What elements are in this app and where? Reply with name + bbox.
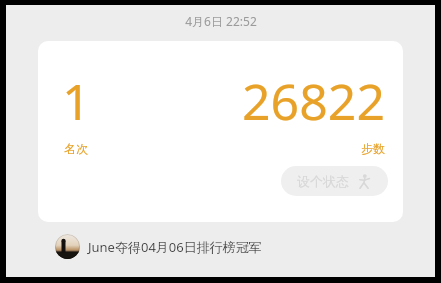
button[interactable]: 设个状态: [281, 166, 388, 196]
staticText: 步数: [361, 141, 385, 156]
button[interactable]: 1: [38, 41, 403, 222]
staticText: 1: [62, 67, 91, 135]
staticText: June夺得04月06日排行榜冠军: [88, 238, 262, 256]
button[interactable]: June夺得04月06日排行榜冠军: [55, 234, 415, 259]
other: Set status: [357, 174, 372, 189]
staticText: 设个状态: [297, 173, 349, 189]
staticText: 4月6日 22:52: [185, 13, 257, 29]
staticText: 26822: [242, 67, 385, 135]
staticText: 名次: [64, 141, 88, 156]
